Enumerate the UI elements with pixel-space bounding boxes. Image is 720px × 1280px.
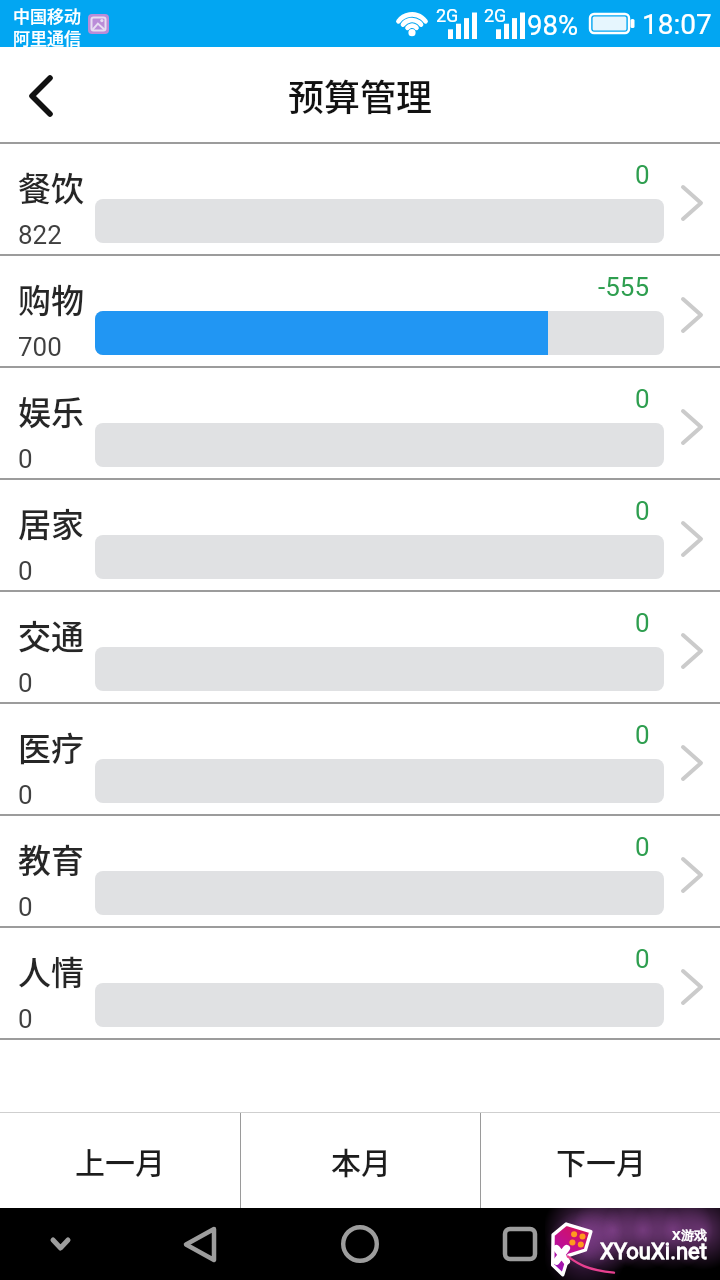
- staticText: 本月: [331, 1139, 391, 1182]
- staticText: 上一月: [75, 1139, 165, 1182]
- staticText: 0: [635, 832, 650, 862]
- button[interactable]: 下一月: [481, 1113, 720, 1208]
- staticText: 教育: [18, 835, 84, 883]
- staticText: 交通: [18, 611, 84, 659]
- staticText: X游戏: [672, 1226, 707, 1244]
- staticText: 0: [635, 384, 650, 414]
- staticText: 0: [18, 780, 33, 810]
- staticText: 822: [18, 220, 62, 250]
- button[interactable]: 购物: [0, 256, 720, 366]
- button[interactable]: 交通: [0, 592, 720, 702]
- staticText: 18:07: [642, 8, 712, 41]
- button[interactable]: 教育: [0, 816, 720, 926]
- staticText: 0: [18, 892, 33, 922]
- staticText: 人情: [18, 947, 84, 995]
- staticText: 0: [18, 668, 33, 698]
- staticText: 餐饮: [18, 163, 84, 211]
- staticText: 0: [18, 1004, 33, 1034]
- staticText: 0: [18, 444, 33, 474]
- staticText: 中国移动: [13, 3, 81, 28]
- button[interactable]: Recents: [484, 1208, 556, 1280]
- staticText: 0: [635, 496, 650, 526]
- staticText: 2G: [436, 5, 459, 26]
- button[interactable]: Back: [0, 47, 80, 142]
- staticText: 0: [635, 160, 650, 190]
- staticText: 2G: [484, 5, 507, 26]
- staticText: 医疗: [18, 723, 84, 771]
- button[interactable]: 上一月: [0, 1113, 240, 1208]
- staticText: -555: [598, 272, 650, 302]
- staticText: 下一月: [556, 1139, 646, 1182]
- staticText: 购物: [18, 275, 84, 323]
- button[interactable]: 医疗: [0, 704, 720, 814]
- button[interactable]: 餐饮: [0, 144, 720, 254]
- staticText: 预算管理: [288, 69, 433, 121]
- button[interactable]: 本月: [241, 1113, 480, 1208]
- button[interactable]: Hide keyboard: [24, 1208, 96, 1280]
- staticText: 娱乐: [18, 387, 84, 435]
- staticText: 阿里通信: [13, 25, 81, 50]
- staticText: 居家: [18, 499, 84, 547]
- staticText: 98%: [527, 9, 579, 41]
- staticText: 0: [635, 720, 650, 750]
- button[interactable]: 娱乐: [0, 368, 720, 478]
- staticText: XYouXi.net: [600, 1239, 707, 1265]
- button[interactable]: Home: [324, 1208, 396, 1280]
- staticText: 700: [18, 332, 62, 362]
- button[interactable]: 人情: [0, 928, 720, 1038]
- staticText: 0: [635, 608, 650, 638]
- button[interactable]: 居家: [0, 480, 720, 590]
- staticText: 0: [635, 944, 650, 974]
- staticText: 0: [18, 556, 33, 586]
- button[interactable]: Back: [164, 1208, 236, 1280]
